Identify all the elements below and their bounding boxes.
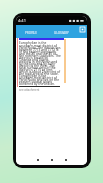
button[interactable]: Open — [78, 25, 87, 34]
staticText: see attachment — [19, 88, 40, 92]
staticText: ▪ ▪ ▪ ▬ — [69, 18, 85, 23]
staticText: PROFILE — [25, 31, 37, 35]
staticText: 4:41 — [18, 18, 26, 23]
staticText: Europhylian is the southern most distric… — [19, 41, 61, 86]
button[interactable]: GLOSSARY — [46, 25, 77, 38]
staticText: GLOSSARY — [54, 31, 69, 35]
button[interactable]: PROFILE — [16, 25, 46, 38]
